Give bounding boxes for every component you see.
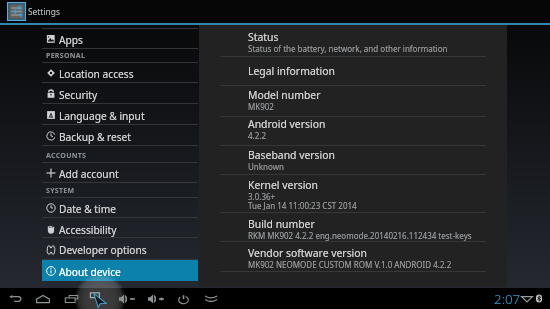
- staticText: Status of the battery, network, and othe…: [248, 43, 448, 54]
- staticText: Baseband version: [248, 148, 335, 162]
- button[interactable]: [42, 217, 198, 238]
- button[interactable]: Home: [29, 288, 57, 309]
- button[interactable]: [42, 162, 198, 183]
- button[interactable]: [199, 56, 507, 84]
- button[interactable]: Power: [169, 288, 197, 309]
- button[interactable]: [42, 238, 198, 260]
- staticText: Model number: [248, 88, 321, 102]
- button[interactable]: [42, 83, 198, 104]
- staticText: Tue Jan 14 11:00:23 CST 2014: [248, 200, 357, 211]
- staticText: Android version: [248, 117, 326, 131]
- staticText: Vendor software version: [248, 246, 368, 260]
- button[interactable]: [42, 125, 198, 146]
- button[interactable]: Expand: [197, 288, 225, 309]
- staticText: SYSTEM: [46, 186, 75, 196]
- staticText: Developer options: [59, 243, 147, 257]
- staticText: MK902 NEOMODE CUSTOM ROM V.1.0 ANDROID 4…: [248, 259, 452, 270]
- button[interactable]: Volume down: [113, 288, 141, 309]
- button[interactable]: [199, 145, 507, 175]
- staticText: Add account: [59, 167, 119, 181]
- button[interactable]: [42, 197, 198, 218]
- button[interactable]: [199, 241, 507, 271]
- staticText: 4.2.2: [248, 130, 267, 141]
- staticText: Kernel version: [248, 178, 319, 192]
- button[interactable]: [199, 116, 507, 145]
- staticText: MK902: [248, 101, 274, 112]
- staticText: About device: [59, 265, 121, 279]
- staticText: ACCOUNTS: [46, 151, 87, 161]
- staticText: Status: [248, 30, 279, 44]
- staticText: Date & time: [59, 202, 116, 216]
- staticText: Unknown: [248, 161, 284, 172]
- staticText: Location access: [59, 67, 134, 81]
- staticText: Build number: [248, 217, 315, 231]
- staticText: Legal information: [248, 64, 335, 78]
- button[interactable]: Screenshot: [85, 288, 113, 309]
- staticText: 2:07: [494, 290, 521, 308]
- button[interactable]: [42, 104, 198, 125]
- button[interactable]: [199, 174, 507, 212]
- staticText: Settings: [28, 6, 60, 17]
- button[interactable]: [42, 28, 198, 49]
- button[interactable]: Recent apps: [57, 288, 85, 309]
- button[interactable]: Back: [1, 288, 29, 309]
- button[interactable]: [42, 62, 198, 83]
- button[interactable]: [42, 260, 198, 281]
- staticText: Security: [59, 88, 98, 102]
- staticText: PERSONAL: [46, 51, 86, 61]
- button[interactable]: Settings: [7, 2, 26, 21]
- staticText: Apps: [59, 33, 83, 47]
- button[interactable]: [199, 25, 507, 56]
- staticText: Accessibility: [59, 223, 117, 237]
- staticText: Language & input: [59, 109, 145, 123]
- button[interactable]: Volume up: [142, 288, 170, 309]
- staticText: Backup & reset: [59, 130, 132, 144]
- button[interactable]: [199, 212, 507, 241]
- staticText: 3.0.36+: [248, 191, 276, 202]
- staticText: RKM MK902 4.2.2 eng.neomode.20140216.112…: [248, 230, 472, 241]
- button[interactable]: [199, 85, 507, 116]
